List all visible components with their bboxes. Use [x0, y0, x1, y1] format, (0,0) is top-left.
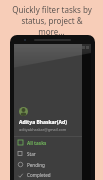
button[interactable]: All tasks: [14, 137, 82, 148]
button[interactable]: Finish next presentation: [14, 81, 91, 93]
staticText: adityabhaskar@gmail.com: [19, 127, 67, 132]
button[interactable]: Aditya Bhaskar(Ad): [14, 104, 82, 136]
button[interactable]: Star: [14, 148, 82, 159]
button[interactable]: Start the Singularity: [14, 69, 91, 81]
staticText: Aditya Bhaskar(Ad): [19, 119, 67, 126]
staticText: Pending: [27, 162, 45, 168]
staticText: status, project &: [21, 15, 83, 26]
staticText: Completed: [27, 172, 51, 178]
button[interactable]: Pending: [14, 159, 82, 170]
staticText: more...: [38, 26, 65, 37]
button[interactable]: Completed: [14, 170, 82, 180]
staticText: Star: [27, 151, 36, 157]
staticText: Quickly filter tasks by: [12, 4, 92, 15]
staticText: All tasks: [27, 140, 47, 146]
